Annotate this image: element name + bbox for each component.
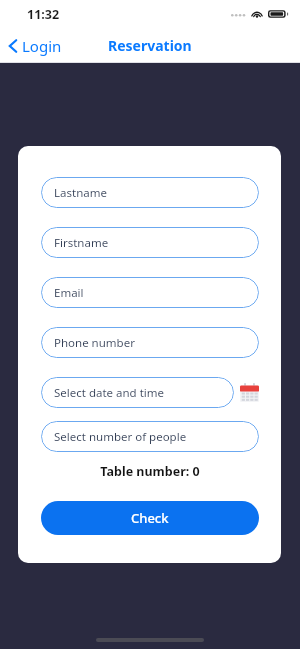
- staticText: Firstname: [54, 235, 109, 251]
- staticText: 11:32: [27, 6, 60, 23]
- staticText: Lastname: [54, 185, 107, 201]
- button[interactable]: Lastname: [41, 177, 259, 208]
- button[interactable]: Select number of people: [41, 421, 259, 452]
- button[interactable]: Firstname: [41, 227, 259, 258]
- staticText: Select date and time: [54, 385, 165, 401]
- staticText: Login: [22, 36, 62, 56]
- button[interactable]: Login: [0, 32, 72, 60]
- button[interactable]: Phone number: [41, 327, 259, 358]
- button[interactable]: Select date and time: [41, 377, 234, 408]
- staticText: Phone number: [54, 335, 135, 351]
- button[interactable]: Open date picker: [240, 383, 259, 402]
- staticText: Email: [54, 285, 84, 301]
- staticText: Reservation: [108, 36, 192, 55]
- staticText: Check: [131, 509, 169, 527]
- staticText: Select number of people: [54, 429, 187, 445]
- button[interactable]: Check: [41, 501, 259, 535]
- staticText: Table number: 0: [41, 463, 259, 480]
- button[interactable]: Email: [41, 277, 259, 308]
